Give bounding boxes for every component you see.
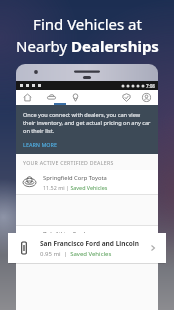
staticText: Once you connect with dealers, you can v…	[23, 111, 151, 135]
staticText: 7:08	[146, 83, 155, 89]
staticText: LEARN MORE	[23, 141, 57, 148]
staticText: 11.52 mi | Saved Vehicles	[43, 184, 108, 191]
staticText: Bob Aikins Ford	[43, 230, 86, 238]
button[interactable]: Springfield Corp Toyota	[16, 170, 158, 194]
staticText: Find Vehicles at	[33, 14, 142, 34]
button[interactable]: Cars	[46, 92, 57, 103]
button[interactable]: Home	[22, 92, 33, 103]
button[interactable]: Protection	[121, 92, 132, 103]
button[interactable]: Dealers	[70, 92, 81, 103]
staticText: 0.95 mi | Saved Vehicles	[40, 250, 112, 258]
button[interactable]: LEARN MORE	[23, 141, 57, 148]
staticText: 10.0 mi | Saved Vehicles	[43, 240, 105, 247]
button[interactable]: San Francisco Ford and Lincoln	[8, 233, 166, 263]
other: Open dealer	[148, 243, 158, 253]
staticText: Springfield Corp Toyota	[43, 174, 107, 182]
button[interactable]: Bob Aikins Ford	[16, 226, 158, 250]
staticText: YOUR ACTIVE CERTIFIED DEALERS	[23, 159, 114, 166]
staticText: San Francisco Ford and Lincoln	[40, 239, 140, 248]
button[interactable]: Profile	[141, 92, 152, 103]
staticText: Nearby Dealerships	[16, 36, 159, 56]
